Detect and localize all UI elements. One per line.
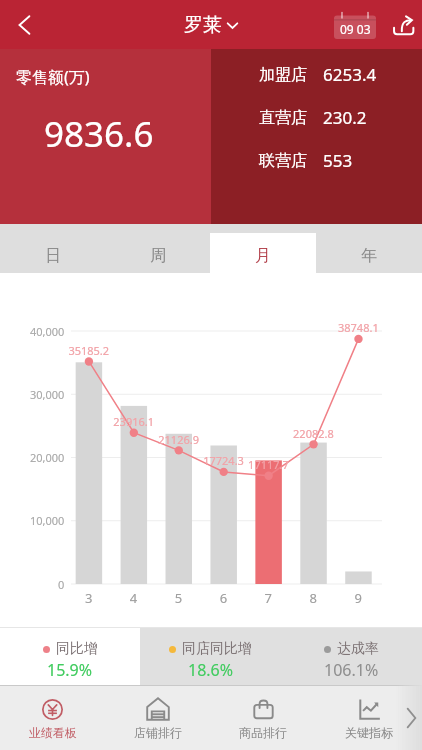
staticText: 同店同比增: [182, 640, 252, 658]
staticText: 日: [45, 246, 61, 266]
button[interactable]: Share: [385, 3, 422, 47]
staticText: 230.2: [323, 106, 367, 129]
button[interactable]: 加盟店: [259, 63, 377, 86]
button[interactable]: 商品排行: [210, 685, 316, 750]
staticText: 零售额(万): [16, 66, 90, 88]
button[interactable]: 月: [210, 233, 316, 273]
staticText: 直营店: [259, 108, 307, 128]
staticText: 达成率: [337, 640, 379, 658]
staticText: 15.9%: [47, 659, 93, 681]
staticText: 关键指标: [345, 725, 393, 740]
staticText: 106.1%: [324, 659, 379, 681]
button[interactable]: Back: [0, 0, 48, 49]
staticText: 553: [323, 149, 353, 172]
button[interactable]: 同店同比增: [140, 628, 281, 685]
staticText: 09 03: [340, 21, 371, 37]
button[interactable]: More: [396, 685, 422, 750]
staticText: 月: [255, 246, 271, 266]
button[interactable]: 联营店: [259, 149, 353, 172]
button[interactable]: Calendar: [334, 3, 384, 47]
staticText: 周: [150, 246, 166, 266]
staticText: 商品排行: [239, 725, 287, 740]
staticText: 年: [361, 246, 377, 266]
button[interactable]: 周: [105, 224, 210, 273]
button[interactable]: 同比增: [0, 628, 140, 685]
staticText: 18.6%: [188, 659, 234, 681]
button[interactable]: 店铺排行: [105, 685, 210, 750]
button[interactable]: 关键指标: [316, 685, 422, 750]
button[interactable]: 年: [316, 224, 422, 273]
button[interactable]: 业绩看板: [0, 685, 105, 750]
staticText: 联营店: [259, 151, 307, 171]
staticText: 业绩看板: [29, 725, 77, 740]
staticText: 6253.4: [323, 63, 377, 86]
button[interactable]: 达成率: [281, 628, 422, 685]
button[interactable]: 罗莱: [184, 13, 238, 37]
button[interactable]: 日: [0, 224, 105, 273]
staticText: 店铺排行: [134, 725, 182, 740]
staticText: 同比增: [56, 640, 98, 658]
staticText: 罗莱: [184, 13, 222, 37]
staticText: 加盟店: [259, 65, 307, 85]
staticText: 9836.6: [44, 110, 154, 158]
button[interactable]: 直营店: [259, 106, 367, 129]
